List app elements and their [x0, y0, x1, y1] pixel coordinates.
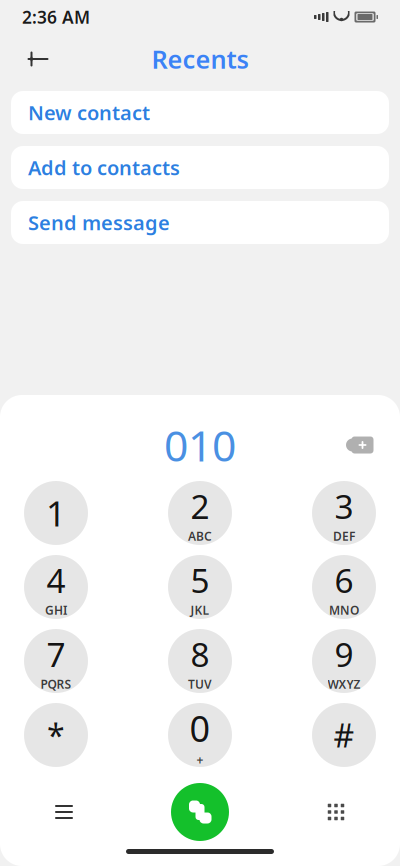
button[interactable]: 0 [168, 703, 232, 767]
button[interactable]: 3 [312, 481, 376, 545]
button[interactable]: 8 [168, 629, 232, 693]
staticText: 7 [46, 632, 65, 676]
staticText: JKL [190, 602, 209, 618]
button[interactable]: Send message [11, 201, 389, 244]
button[interactable]: Delete [336, 425, 384, 465]
button[interactable]: 1 [24, 481, 88, 545]
button[interactable]: * [24, 703, 88, 767]
button[interactable]: Call [171, 783, 229, 841]
staticText: MNO [329, 602, 359, 618]
button[interactable]: Back [16, 37, 60, 81]
staticText: 0 [189, 704, 210, 752]
button[interactable]: 6 [312, 555, 376, 619]
staticText: 3 [334, 484, 353, 528]
staticText: 6 [334, 558, 353, 602]
staticText: 2:36 AM [22, 5, 90, 28]
button[interactable]: New contact [11, 91, 389, 134]
button[interactable]: Call log [36, 784, 92, 840]
button[interactable]: Keypad [308, 784, 364, 840]
staticText: Send message [28, 209, 170, 236]
staticText: 5 [190, 558, 209, 602]
staticText: Recents [151, 42, 248, 76]
staticText: 9 [334, 632, 353, 676]
button[interactable]: 5 [168, 555, 232, 619]
button[interactable]: 7 [24, 629, 88, 693]
staticText: 4 [46, 558, 65, 602]
staticText: 2 [190, 484, 209, 528]
staticText: New contact [28, 99, 150, 126]
staticText: 010 [164, 417, 236, 473]
staticText: PQRS [40, 676, 71, 692]
staticText: TUV [188, 676, 212, 692]
staticText: 8 [190, 632, 209, 676]
staticText: + [196, 752, 203, 768]
button[interactable]: 4 [24, 555, 88, 619]
staticText: WXYZ [327, 676, 360, 692]
staticText: * [47, 714, 65, 756]
staticText: DEF [333, 528, 355, 544]
staticText: 1 [46, 490, 66, 536]
button[interactable]: 2 [168, 481, 232, 545]
button[interactable]: Add to contacts [11, 146, 389, 189]
staticText: ABC [188, 528, 212, 544]
button[interactable]: 9 [312, 629, 376, 693]
staticText: GHI [45, 602, 67, 618]
staticText: Add to contacts [28, 154, 180, 181]
staticText: # [333, 714, 354, 756]
button[interactable]: # [312, 703, 376, 767]
